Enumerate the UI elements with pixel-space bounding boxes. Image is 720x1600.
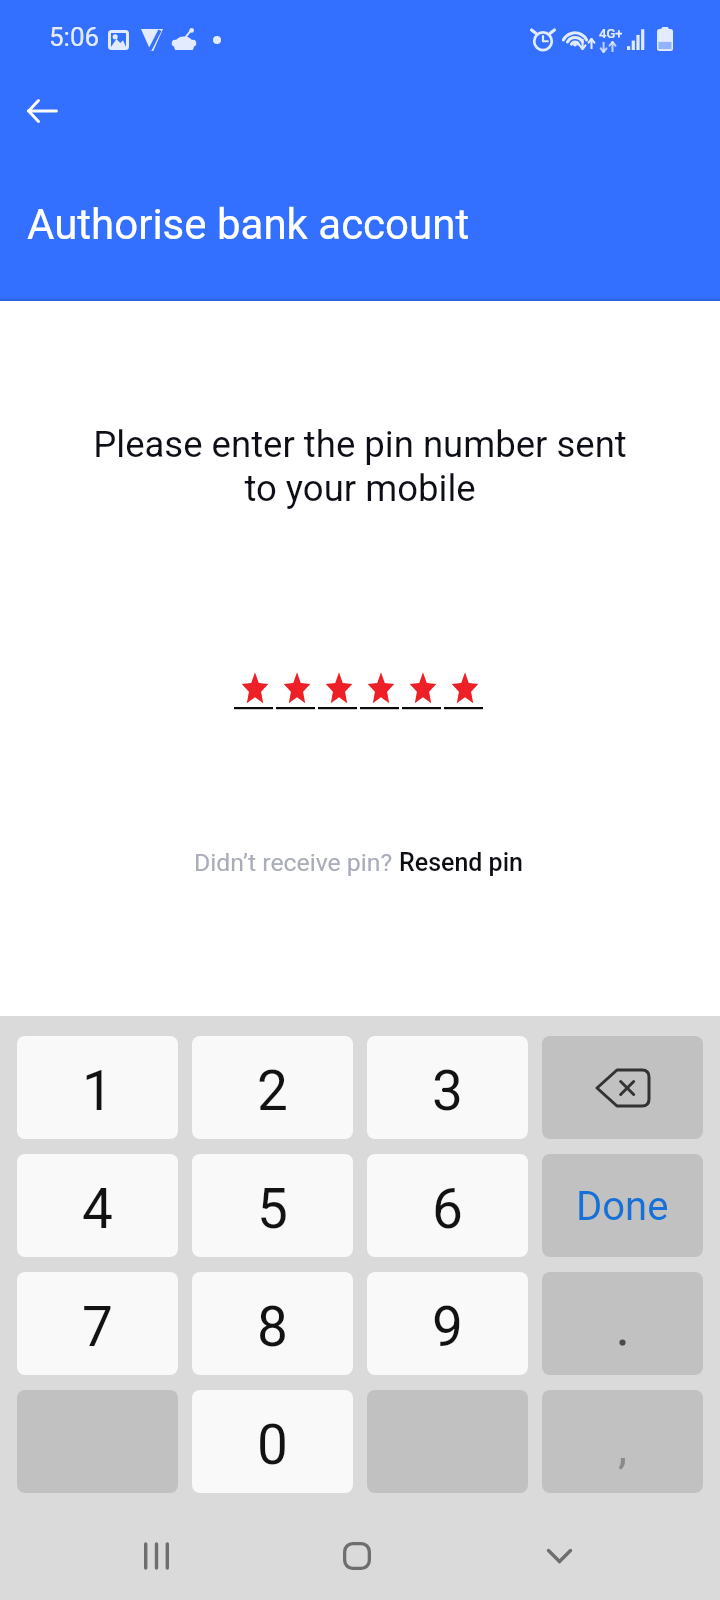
staticText: 1 (82, 1059, 113, 1123)
staticText: 3 (432, 1059, 463, 1123)
staticText: Done (576, 1183, 669, 1230)
staticText: Please enter the pin number sent to your… (0, 423, 720, 510)
staticText: 0 (257, 1413, 288, 1477)
staticText: 5:06 (49, 22, 100, 52)
button[interactable]: Recents (121, 1521, 191, 1591)
button[interactable]: Backspace (542, 1036, 703, 1139)
button[interactable]: Home (322, 1521, 392, 1591)
button[interactable]: Comma (542, 1390, 703, 1493)
button[interactable]: 1 (17, 1036, 178, 1139)
button[interactable]: 3 (367, 1036, 528, 1139)
button[interactable]: 6 (367, 1154, 528, 1257)
staticText: 4G+ (599, 26, 623, 41)
button[interactable]: 8 (192, 1272, 353, 1375)
other: Backspace (597, 1070, 649, 1106)
button[interactable]: 7 (17, 1272, 178, 1375)
staticText: 6 (432, 1177, 463, 1241)
staticText: 4 (82, 1177, 113, 1241)
button[interactable]: 9 (367, 1272, 528, 1375)
staticText: 9 (432, 1295, 463, 1359)
staticText: 7 (82, 1295, 113, 1359)
button[interactable]: Back (12, 81, 72, 141)
button[interactable]: 2 (192, 1036, 353, 1139)
staticText: 8 (257, 1295, 288, 1359)
button[interactable]: Done (542, 1154, 703, 1257)
button[interactable]: 5 (192, 1154, 353, 1257)
button[interactable]: Decimal point (542, 1272, 703, 1375)
staticText: Didn’t receive pin? (194, 848, 399, 877)
staticText: Authorise bank account (27, 200, 470, 249)
button[interactable]: 4 (17, 1154, 178, 1257)
button[interactable]: PIN entry field (234, 668, 486, 712)
staticText: , (618, 1420, 628, 1474)
button[interactable]: Hide keyboard (524, 1521, 594, 1591)
staticText: 2 (257, 1059, 288, 1123)
button[interactable]: 0 (192, 1390, 353, 1493)
staticText: Resend pin (399, 848, 523, 877)
staticText: 5 (257, 1177, 288, 1241)
button[interactable]: Resend pin (399, 848, 523, 877)
